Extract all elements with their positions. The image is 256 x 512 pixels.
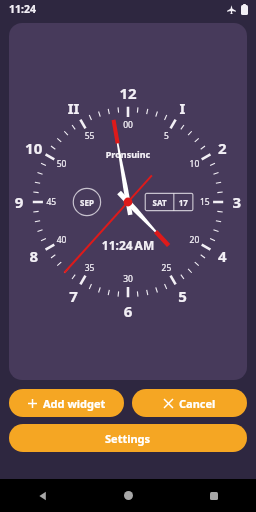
button[interactable]: Add widget	[9, 389, 124, 417]
staticText: 11:24	[9, 2, 36, 16]
button[interactable]: Cancel	[132, 389, 247, 417]
button[interactable]	[9, 23, 247, 380]
staticText: Cancel	[179, 396, 216, 411]
button[interactable]: Recents	[171, 479, 256, 512]
staticText: Settings	[105, 431, 151, 446]
button[interactable]: Settings	[9, 424, 247, 452]
button[interactable]: Home	[86, 479, 171, 512]
button[interactable]: Back	[0, 479, 86, 512]
staticText: Add widget	[43, 396, 106, 411]
